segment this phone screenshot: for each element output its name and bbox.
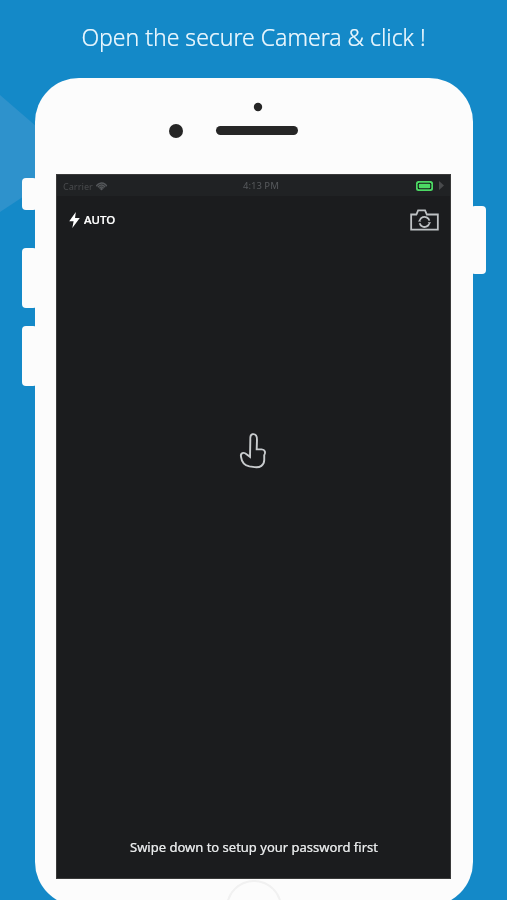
- staticText: Open the secure Camera & click !: [81, 21, 426, 52]
- staticText: Carrier: [63, 180, 93, 192]
- staticText: 4:13 PM: [243, 179, 279, 192]
- button[interactable]: Switch camera: [407, 203, 441, 237]
- button[interactable]: Tap to capture: [239, 432, 268, 469]
- staticText: AUTO: [84, 212, 116, 228]
- staticText: Swipe down to setup your password first: [130, 838, 378, 856]
- button[interactable]: AUTO: [66, 208, 119, 232]
